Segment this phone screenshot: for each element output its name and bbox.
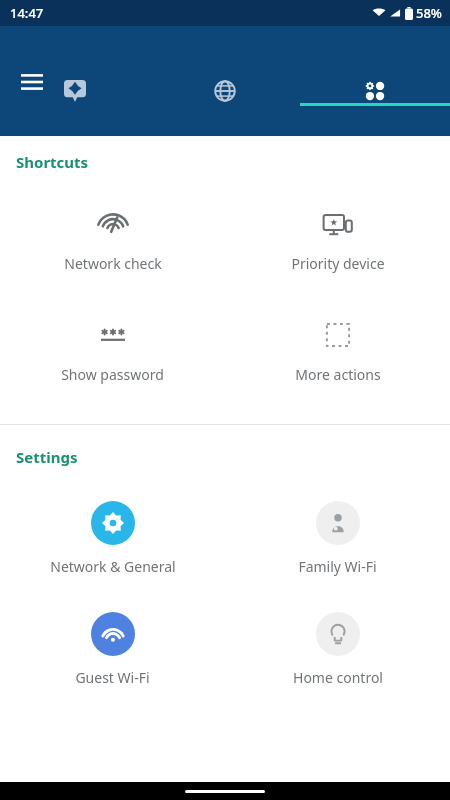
- button[interactable]: Network & General: [0, 497, 225, 580]
- button[interactable]: Show password: [0, 311, 225, 390]
- button[interactable]: Settings: [300, 84, 450, 106]
- staticText: 14:47: [10, 4, 44, 22]
- button[interactable]: Family Wi-Fi: [225, 497, 450, 580]
- staticText: 58%: [416, 4, 442, 22]
- button[interactable]: More actions: [225, 311, 450, 390]
- staticText: Network & General: [50, 557, 176, 576]
- button[interactable]: Guest Wi-Fi: [0, 608, 225, 691]
- staticText: Guest Wi-Fi: [75, 668, 150, 687]
- staticText: Settings: [16, 447, 78, 467]
- staticText: Show password: [61, 365, 164, 384]
- staticText: More actions: [295, 365, 381, 384]
- button[interactable]: Internet: [150, 84, 300, 106]
- staticText: Priority device: [291, 254, 385, 273]
- staticText: Network check: [64, 254, 162, 273]
- staticText: Home control: [293, 668, 383, 687]
- button[interactable]: Menu: [10, 60, 54, 104]
- staticText: Shortcuts: [16, 152, 89, 172]
- button[interactable]: Network check: [0, 200, 225, 279]
- button[interactable]: Priority device: [225, 200, 450, 279]
- staticText: Family Wi-Fi: [298, 557, 377, 576]
- button[interactable]: Assistant: [0, 84, 150, 106]
- button[interactable]: Home control: [225, 608, 450, 691]
